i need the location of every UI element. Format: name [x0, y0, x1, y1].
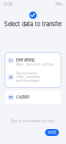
staticText: Apps, data and settings — [16, 63, 54, 66]
staticText: Everything — [16, 58, 34, 62]
staticText: Select data to transfer — [4, 21, 62, 28]
staticText: Custom — [16, 95, 29, 99]
staticText: Data is transferred securely — [11, 119, 55, 123]
button[interactable]: Everything — [0, 53, 66, 87]
staticText: Get accounts, calls, contacts and messag… — [16, 72, 40, 82]
staticText: 76% — [55, 2, 63, 6]
button[interactable]: Custom — [0, 90, 66, 104]
staticText: Next — [48, 130, 56, 135]
staticText: 12:30 — [3, 2, 13, 6]
button[interactable]: Next — [45, 129, 59, 136]
